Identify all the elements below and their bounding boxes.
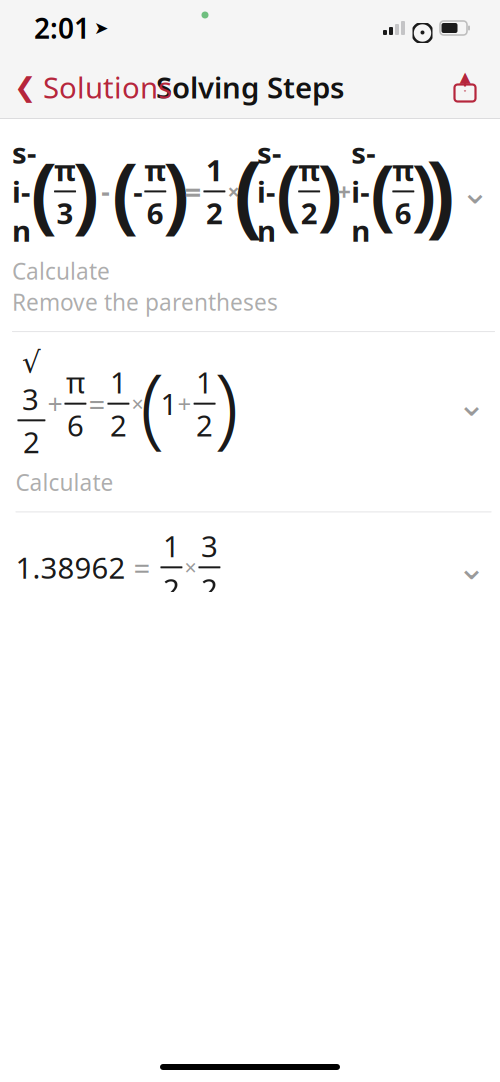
staticText: ( (140, 345, 164, 462)
staticText: Calculate (12, 256, 110, 286)
staticText: + (47, 386, 62, 421)
button[interactable]: Expand step (455, 171, 495, 211)
staticText: + (178, 388, 192, 420)
staticText: = (184, 172, 201, 211)
staticText: ( (370, 140, 395, 243)
staticText: ( (30, 136, 57, 246)
staticText: ) (214, 345, 238, 462)
staticText: 1 (110, 363, 127, 402)
staticText: sin (12, 133, 36, 250)
staticText: Solving Steps (156, 67, 344, 106)
staticText: × (227, 177, 239, 206)
staticText: - (133, 172, 142, 211)
staticText: 2 (301, 193, 318, 232)
staticText: 3 (56, 193, 73, 232)
staticText: ⌄ (461, 172, 490, 211)
staticText: ) (73, 136, 100, 246)
staticText: π (144, 150, 166, 189)
staticText: 2 (201, 569, 218, 608)
staticText: 2 (23, 422, 40, 461)
staticText: - (94, 174, 117, 209)
staticText: ) (317, 140, 342, 243)
staticText: 1 (163, 526, 180, 565)
staticText: = (88, 384, 105, 423)
staticText: Solutions (43, 67, 172, 106)
staticText: 1 (206, 150, 223, 189)
staticText: 2 (206, 193, 223, 232)
staticText: ) (411, 140, 436, 243)
staticText: sin (257, 133, 281, 250)
staticText: = (125, 548, 158, 587)
staticText: sin (351, 133, 375, 250)
staticText: ⌄ (457, 548, 486, 587)
button[interactable]: Share (450, 64, 500, 110)
staticText: 2:01 (34, 9, 90, 47)
staticText: ❮ (14, 72, 36, 102)
staticText: π (66, 363, 85, 402)
staticText: 2 (163, 569, 180, 608)
staticText: ) (163, 136, 190, 246)
staticText: Remove the parentheses (12, 287, 278, 317)
staticText: 6 (147, 193, 164, 232)
button[interactable]: ❮ (0, 59, 172, 114)
staticText: ( (234, 131, 263, 252)
staticText: ⌄ (457, 384, 486, 423)
staticText: 6 (395, 193, 412, 232)
staticText: 1.38962 (15, 548, 125, 587)
staticText: × (131, 389, 143, 418)
button[interactable]: Expand step (452, 547, 492, 587)
staticText: 6 (67, 406, 84, 445)
staticText: 2 (110, 406, 127, 445)
staticText: ( (112, 136, 139, 246)
staticText: × (184, 553, 196, 581)
staticText: √3 (22, 346, 41, 418)
staticText: 1 (196, 363, 213, 402)
staticText: + (337, 175, 351, 207)
staticText: ▲ (459, 69, 470, 85)
staticText: π (392, 150, 414, 189)
staticText: ➤ (94, 18, 109, 38)
staticText: π (54, 150, 76, 189)
button[interactable]: Expand step (452, 384, 492, 424)
staticText: π (298, 150, 320, 189)
staticText: Calculate (15, 467, 113, 497)
staticText: ( (276, 140, 301, 243)
staticText: 1 (161, 384, 178, 423)
staticText: 3 (201, 526, 218, 565)
staticText: 2 (196, 406, 213, 445)
staticText: ) (426, 131, 455, 252)
